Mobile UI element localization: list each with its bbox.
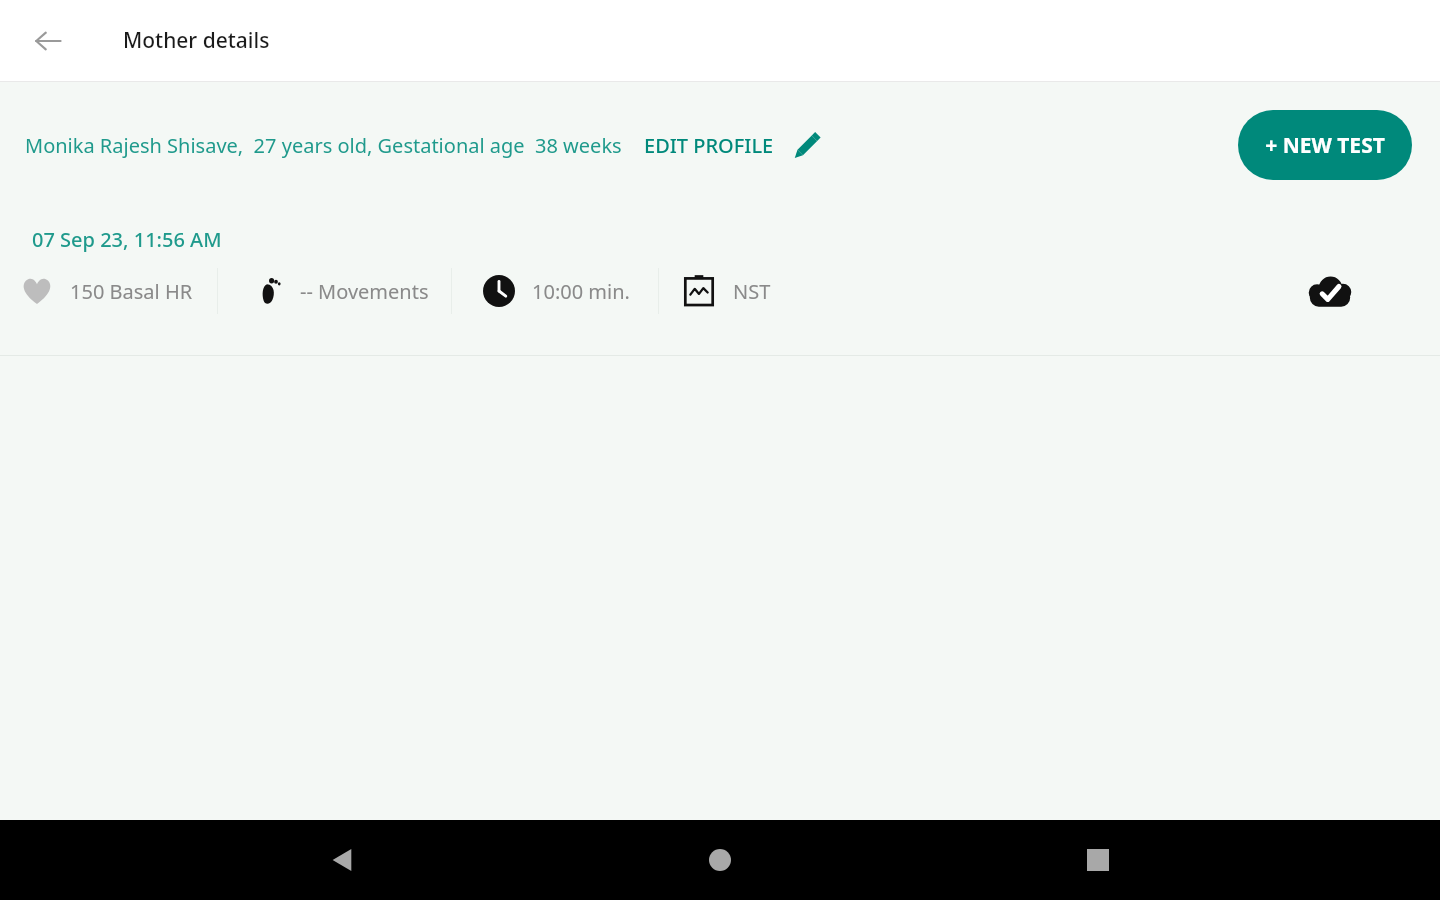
staticText: Monika Rajesh Shisave, 27 years old, Ges…: [25, 132, 622, 159]
button[interactable]: Uploaded: [1300, 261, 1360, 321]
button[interactable]: + NEW TEST: [1238, 110, 1412, 180]
button[interactable]: Recents: [1063, 825, 1133, 895]
staticText: -- Movements: [300, 278, 429, 305]
staticText: + NEW TEST: [1265, 131, 1385, 160]
button[interactable]: 07 Sep 23, 11:56 AM: [0, 208, 1440, 355]
staticText: Mother details: [123, 26, 270, 55]
button[interactable]: Back: [22, 15, 74, 67]
button[interactable]: Back: [308, 825, 378, 895]
staticText: 07 Sep 23, 11:56 AM: [32, 226, 222, 253]
button[interactable]: EDIT PROFILE: [644, 118, 824, 172]
staticText: NST: [733, 278, 771, 305]
button[interactable]: Home: [685, 825, 755, 895]
staticText: 150 Basal HR: [70, 278, 193, 305]
staticText: EDIT PROFILE: [644, 132, 774, 159]
staticText: 10:00 min.: [532, 278, 630, 305]
